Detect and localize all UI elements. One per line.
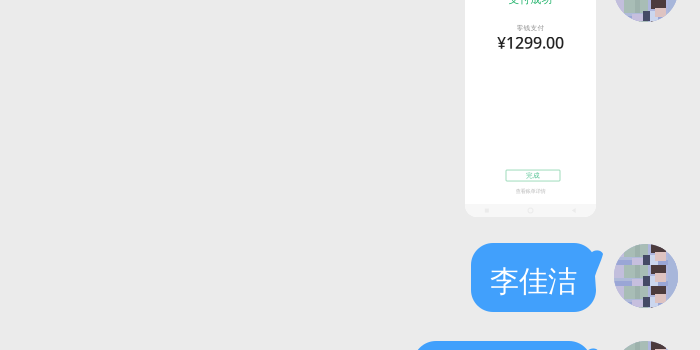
staticText: 零钱支付	[516, 24, 544, 32]
button[interactable]: 李佳洁	[471, 243, 604, 312]
staticText: 完成	[526, 171, 540, 180]
button[interactable]: Contact photo	[614, 0, 678, 22]
staticText: 李佳洁	[490, 263, 577, 299]
button[interactable]: 查看账单详情	[465, 188, 596, 195]
button[interactable]: 完成	[506, 170, 560, 181]
staticText: ¥1299.00	[497, 32, 564, 53]
button[interactable]: Contact photo	[614, 341, 678, 350]
button[interactable]: Photo attachment	[465, 0, 596, 217]
staticText: 支付成功	[508, 0, 552, 6]
button[interactable]: Contact photo	[614, 244, 678, 308]
button[interactable]: Message	[413, 341, 600, 350]
staticText: 查看账单详情	[515, 188, 545, 195]
